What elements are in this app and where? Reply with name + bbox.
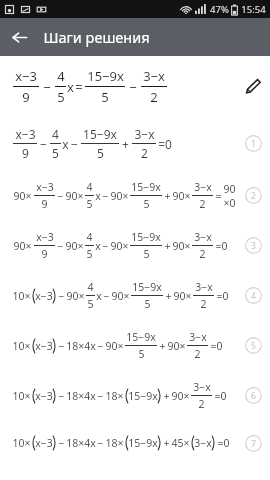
staticText: 90× bbox=[105, 339, 124, 353]
staticText: =0 bbox=[214, 389, 227, 403]
staticText: 15−9x bbox=[87, 67, 124, 85]
staticText: x−3 bbox=[35, 289, 53, 303]
staticText: + bbox=[159, 339, 166, 353]
button[interactable]: 10× bbox=[0, 320, 270, 370]
staticText: x−3 bbox=[15, 126, 36, 142]
staticText: 15−9x bbox=[126, 330, 156, 344]
staticText: 2 bbox=[199, 197, 206, 211]
staticText: − bbox=[97, 389, 104, 403]
staticText: 2 bbox=[141, 145, 148, 161]
button[interactable]: 90× bbox=[0, 220, 270, 270]
staticText: − bbox=[40, 136, 47, 152]
staticText: 5 bbox=[143, 197, 150, 211]
staticText: − bbox=[102, 189, 109, 203]
staticText: − bbox=[58, 436, 65, 450]
staticText: x−3 bbox=[36, 230, 54, 244]
staticText: − bbox=[103, 289, 110, 303]
staticText: 5 bbox=[143, 247, 150, 261]
staticText: 10× bbox=[12, 436, 31, 450]
staticText: 47% bbox=[210, 3, 229, 16]
button[interactable]: x−3 bbox=[0, 116, 270, 170]
staticText: =0 bbox=[158, 136, 172, 152]
button[interactable]: Edit equation bbox=[236, 69, 270, 103]
staticText: x bbox=[95, 239, 101, 253]
staticText: =0 bbox=[217, 436, 230, 450]
staticText: + bbox=[163, 436, 170, 450]
staticText: 9 bbox=[41, 247, 48, 261]
staticText: 2 bbox=[198, 397, 205, 411]
staticText: x bbox=[62, 136, 69, 152]
staticText: 45× bbox=[171, 436, 190, 450]
staticText: 5 bbox=[138, 347, 145, 361]
button[interactable]: 2 bbox=[245, 187, 262, 204]
staticText: 10× bbox=[12, 339, 31, 353]
staticText: 90× bbox=[171, 389, 190, 403]
staticText: 18×4x bbox=[66, 339, 96, 353]
staticText: x−3 bbox=[35, 436, 53, 450]
staticText: − bbox=[71, 136, 78, 152]
staticText: x−3 bbox=[36, 180, 54, 194]
button[interactable]: 10× bbox=[0, 420, 270, 466]
staticText: 4 bbox=[251, 290, 256, 302]
staticText: 4 bbox=[86, 230, 93, 244]
staticText: 3−x bbox=[189, 330, 207, 344]
staticText: 10× bbox=[12, 389, 31, 403]
staticText: 90× bbox=[110, 189, 129, 203]
staticText: − bbox=[58, 339, 65, 353]
button[interactable]: 1 bbox=[245, 135, 262, 152]
staticText: 5 bbox=[86, 197, 93, 211]
staticText: 4 bbox=[52, 126, 59, 142]
staticText: 15−9x bbox=[128, 436, 158, 450]
staticText: 5 bbox=[57, 88, 65, 106]
staticText: 5 bbox=[86, 247, 93, 261]
staticText: + bbox=[164, 239, 171, 253]
staticText: 5 bbox=[52, 145, 59, 161]
staticText: 5 bbox=[101, 88, 109, 106]
button[interactable]: 7 bbox=[245, 435, 262, 452]
staticText: − bbox=[97, 339, 104, 353]
staticText: 9 bbox=[22, 145, 29, 161]
button[interactable]: 4 bbox=[245, 287, 262, 304]
staticText: 3−x bbox=[134, 126, 155, 142]
staticText: 90× bbox=[65, 239, 84, 253]
staticText: 9 bbox=[22, 88, 30, 106]
staticText: − bbox=[57, 239, 64, 253]
staticText: − bbox=[97, 436, 104, 450]
staticText: + bbox=[164, 189, 171, 203]
staticText: 2 bbox=[199, 247, 206, 261]
staticText: 5 bbox=[97, 145, 104, 161]
staticText: 15:54 bbox=[241, 3, 266, 16]
staticText: 2 bbox=[251, 190, 256, 202]
staticText: 90× bbox=[172, 189, 191, 203]
staticText: 2 bbox=[200, 297, 207, 311]
staticText: 7 bbox=[251, 438, 256, 450]
staticText: 3 bbox=[251, 240, 256, 252]
button[interactable]: Back bbox=[0, 18, 38, 56]
staticText: 4 bbox=[86, 180, 93, 194]
staticText: 90× bbox=[65, 189, 84, 203]
staticText: 5 bbox=[251, 340, 256, 352]
staticText: 90×0 bbox=[223, 182, 236, 210]
button[interactable]: 10× bbox=[0, 370, 270, 420]
button[interactable]: 10× bbox=[0, 270, 270, 320]
button[interactable]: 5 bbox=[245, 337, 262, 354]
staticText: 3−x bbox=[194, 180, 212, 194]
button[interactable]: 3 bbox=[245, 237, 262, 254]
staticText: x−3 bbox=[35, 389, 53, 403]
button[interactable]: 6 bbox=[245, 387, 262, 404]
button[interactable]: 90× bbox=[0, 170, 270, 220]
staticText: 18×4x bbox=[66, 389, 96, 403]
staticText: 90× bbox=[172, 239, 191, 253]
staticText: − bbox=[129, 78, 137, 96]
staticText: 3−x bbox=[194, 436, 212, 450]
staticText: 4 bbox=[87, 280, 94, 294]
staticText: x bbox=[95, 189, 101, 203]
staticText: 9 bbox=[41, 197, 48, 211]
staticText: =0 bbox=[216, 289, 229, 303]
staticText: 15−9x bbox=[131, 180, 161, 194]
staticText: 3−x bbox=[193, 380, 211, 394]
staticText: x−3 bbox=[35, 339, 53, 353]
staticText: =0 bbox=[215, 239, 228, 253]
staticText: 90× bbox=[167, 339, 186, 353]
staticText: 18× bbox=[105, 436, 124, 450]
